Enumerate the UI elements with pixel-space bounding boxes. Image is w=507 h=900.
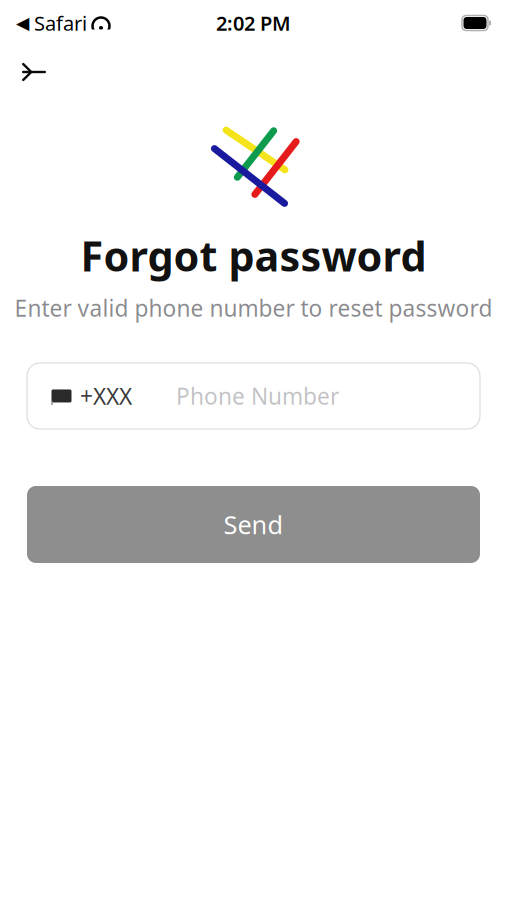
staticText: Phone Number xyxy=(176,381,339,411)
button[interactable]: +XXX xyxy=(27,363,480,429)
staticText: ◀ xyxy=(16,13,29,33)
staticText: Safari xyxy=(34,10,87,36)
staticText: Forgot password xyxy=(80,228,426,283)
staticText: +XXX xyxy=(80,381,132,411)
button[interactable]: Send xyxy=(27,486,480,563)
staticText: Send xyxy=(223,508,283,541)
staticText: 2:02 PM xyxy=(216,10,291,36)
button[interactable]: Back xyxy=(12,50,56,94)
staticText: Enter valid phone number to reset passwo… xyxy=(14,293,492,323)
